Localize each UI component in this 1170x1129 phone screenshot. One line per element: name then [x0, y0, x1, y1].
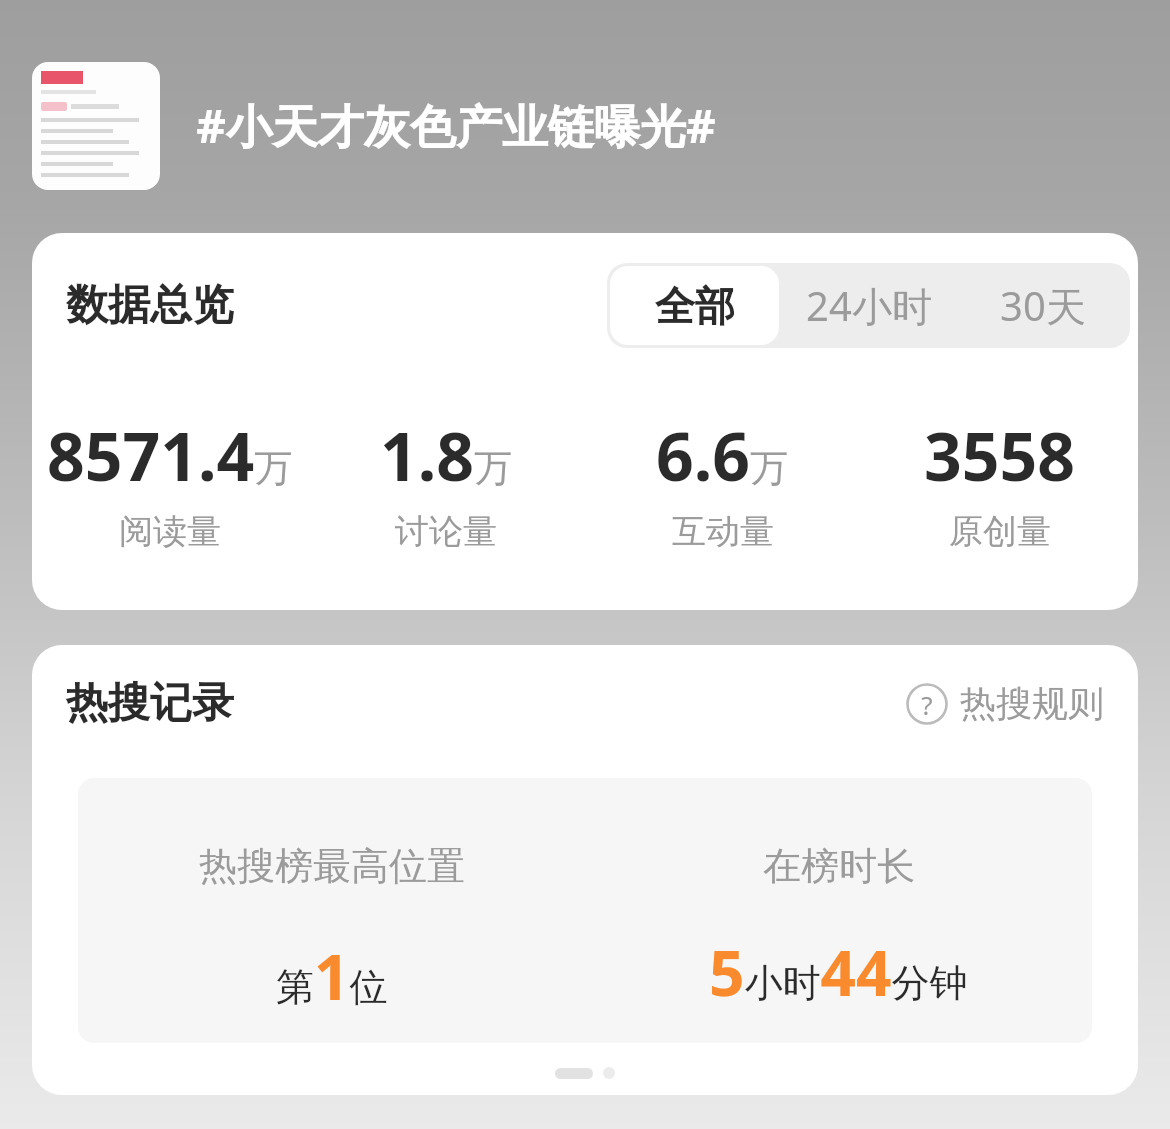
staticText: 阅读量	[119, 510, 221, 553]
staticText: 原创量	[949, 510, 1051, 553]
staticText: 1.8万	[380, 410, 513, 500]
button[interactable]: 3558	[861, 410, 1138, 553]
staticText: 3558	[924, 410, 1076, 500]
button[interactable]: 8571.4万	[32, 410, 308, 553]
button[interactable]: 6.6万	[584, 410, 861, 553]
button[interactable]: 30天	[956, 263, 1130, 348]
staticText: 互动量	[672, 510, 774, 553]
staticText: #小天才灰色产业链曝光#	[196, 94, 716, 157]
button[interactable]: 热搜榜最高位置	[78, 778, 1092, 1043]
staticText: 全部	[655, 281, 735, 331]
button[interactable]: 全部	[610, 266, 779, 345]
staticText: 5小时44分钟	[709, 930, 968, 1014]
staticText: 热搜榜最高位置	[199, 842, 465, 890]
staticText: 24小时	[806, 278, 932, 333]
staticText: 在榜时长	[763, 842, 915, 890]
button[interactable]: Post preview	[32, 62, 160, 190]
staticText: 6.6万	[656, 410, 789, 500]
button[interactable]: 24小时	[782, 263, 956, 348]
staticText: ?	[921, 687, 933, 722]
staticText: 第1位	[276, 934, 388, 1018]
staticText: 热搜规则	[960, 681, 1104, 726]
staticText: 8571.4万	[47, 410, 293, 500]
other: 热搜规则说明	[906, 683, 948, 725]
staticText: 讨论量	[395, 510, 497, 553]
staticText: 热搜记录	[66, 677, 234, 730]
staticText: 30天	[1000, 278, 1086, 333]
staticText: 数据总览	[66, 279, 234, 332]
button[interactable]: 1.8万	[308, 410, 584, 553]
button[interactable]: 热搜规则说明	[906, 681, 1104, 726]
